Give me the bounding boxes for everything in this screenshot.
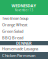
button[interactable]: Green Salad	[0, 28, 48, 34]
button[interactable]: Homemade Lasagna	[0, 45, 48, 52]
staticText: Two Bean Soup	[2, 16, 28, 21]
staticText: Green Salad	[2, 29, 23, 34]
staticText: November 13	[14, 8, 33, 12]
staticText: Chicken Parmesan	[2, 53, 35, 58]
staticText: Orange Wheat	[2, 22, 27, 27]
button[interactable]: Orange Wheat	[0, 21, 48, 28]
staticText: BBQ Bread	[2, 35, 23, 40]
staticText: DINNER	[16, 41, 32, 46]
staticText: Homemade Lasagna	[2, 46, 38, 51]
staticText: WEDNESDAY	[11, 3, 36, 8]
button[interactable]: Two Bean Soup	[0, 15, 48, 21]
button[interactable]: Chicken Parmesan	[0, 52, 48, 59]
button[interactable]: BBQ Bread	[0, 34, 48, 41]
